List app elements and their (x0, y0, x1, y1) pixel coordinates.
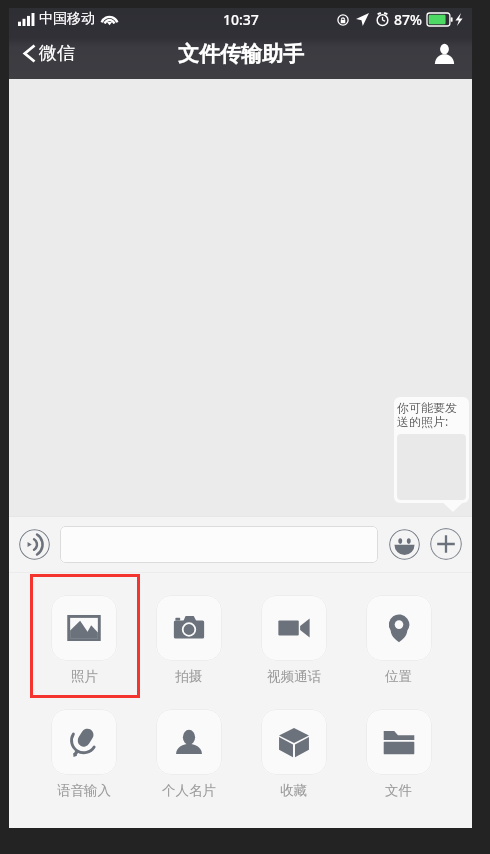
staticText: 87% (394, 10, 422, 29)
staticText: 收藏 (280, 782, 307, 799)
staticText: 个人名片 (162, 782, 216, 799)
button[interactable]: Files (346, 709, 451, 799)
staticText: 中国移动 (39, 10, 95, 28)
staticText: 文件传输助手 (178, 41, 304, 67)
button[interactable]: Back to WeChat (9, 36, 85, 71)
button[interactable]: Voice input (32, 709, 136, 799)
button[interactable]: Camera (136, 595, 241, 685)
staticText: 10:37 (223, 10, 259, 29)
button[interactable]: Emoji (389, 529, 420, 560)
button[interactable]: Photos (32, 595, 136, 685)
button[interactable]: Contact card (136, 709, 241, 799)
staticText: 你可能要发送的照片: (397, 400, 466, 430)
staticText: 拍摄 (175, 668, 202, 685)
staticText: 微信 (39, 42, 75, 65)
button[interactable]: Voice input (19, 529, 50, 560)
staticText: 视频通话 (267, 668, 321, 685)
button[interactable]: Favorites (241, 709, 346, 799)
button[interactable]: Video call (241, 595, 346, 685)
staticText: 位置 (385, 668, 412, 685)
button[interactable]: Location (346, 595, 451, 685)
staticText: 语音输入 (57, 782, 111, 799)
staticText: 文件 (385, 782, 412, 799)
button[interactable] (60, 526, 378, 563)
staticText: 照片 (71, 668, 98, 685)
button[interactable]: Contact info (420, 35, 472, 72)
button[interactable]: 你可能要发送的照片: (394, 397, 469, 503)
button[interactable]: More (430, 528, 462, 560)
